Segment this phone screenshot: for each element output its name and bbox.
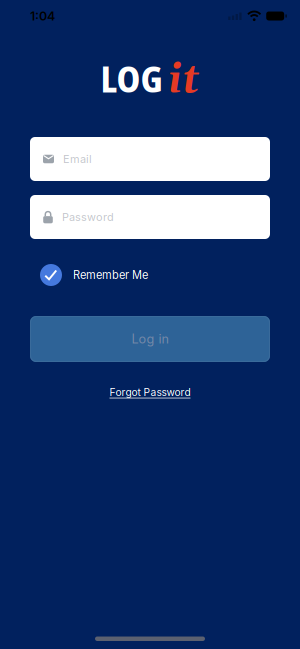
staticText: 1:04 xyxy=(30,8,55,23)
staticText: Email xyxy=(63,152,92,166)
button[interactable]: Forgot Password xyxy=(109,386,190,398)
staticText: Remember Me xyxy=(73,268,148,282)
staticText: Password xyxy=(62,210,114,224)
button[interactable]: Password xyxy=(30,195,270,239)
staticText: Forgot Password xyxy=(109,386,190,398)
staticText: Log in xyxy=(131,331,168,347)
staticText: LOG xyxy=(100,54,162,103)
button[interactable]: Remember Me xyxy=(40,264,148,286)
staticText: it xyxy=(167,55,199,106)
button[interactable]: Email xyxy=(30,137,270,181)
button[interactable]: Log in xyxy=(30,316,270,362)
